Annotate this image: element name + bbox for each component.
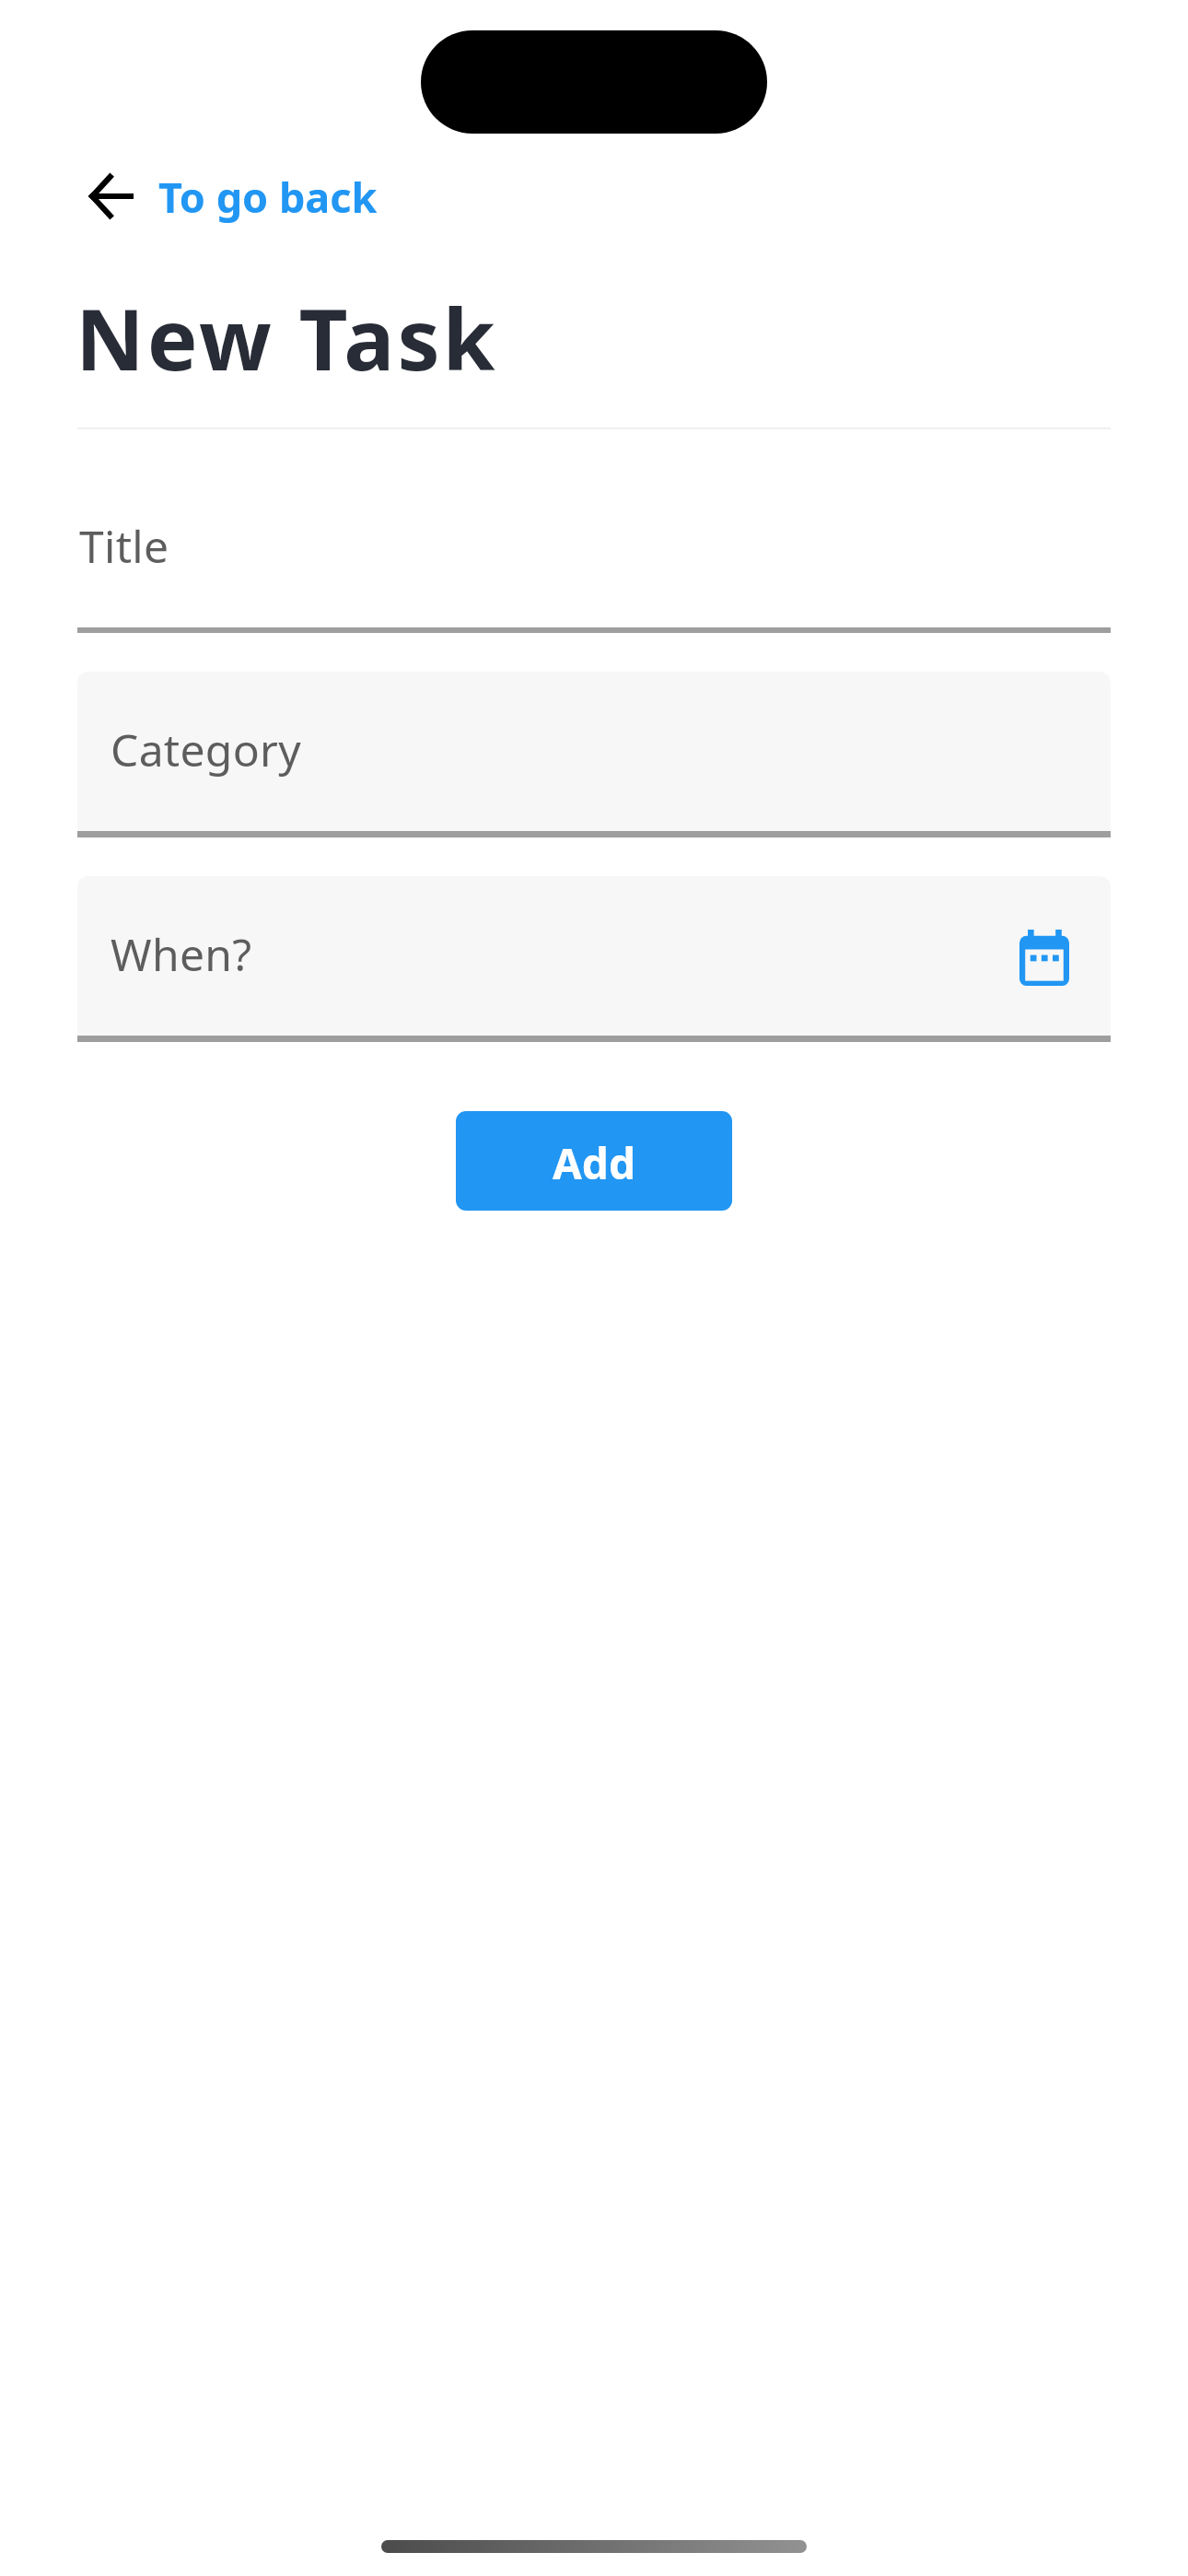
button[interactable]: Category [77,672,1111,837]
staticText: Add [553,1134,635,1192]
staticText: To go back [158,169,378,225]
button[interactable]: Pick a date [1019,930,1069,986]
staticText: Title [79,516,169,576]
button[interactable]: Title [77,488,1111,633]
staticText: Category [111,720,301,779]
button[interactable]: To go back [77,164,390,230]
staticText: When? [111,924,252,984]
button[interactable]: Add [456,1111,732,1211]
staticText: New Task [76,280,498,395]
button[interactable]: When? [77,876,1111,1042]
